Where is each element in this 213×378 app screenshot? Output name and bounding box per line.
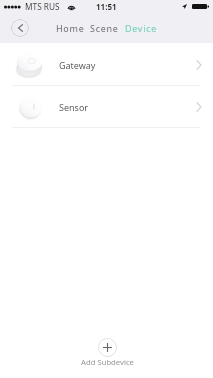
button[interactable]: Device (122, 19, 160, 37)
staticText: Add Subdevice (81, 357, 134, 367)
staticText: Scene (90, 22, 119, 34)
staticText: 11:51 (96, 1, 117, 12)
staticText: Home (56, 22, 85, 34)
staticText: Gateway (59, 59, 96, 71)
button[interactable]: Back (11, 19, 29, 37)
staticText: Device (125, 22, 157, 34)
staticText: MTS RUS (25, 1, 60, 12)
button[interactable]: Gateway (0, 44, 213, 86)
button[interactable]: Add Subdevice (0, 338, 213, 367)
button[interactable]: Home (53, 19, 88, 37)
button[interactable]: Scene (87, 19, 122, 37)
button[interactable]: Sensor (0, 86, 213, 128)
staticText: Sensor (59, 101, 89, 113)
